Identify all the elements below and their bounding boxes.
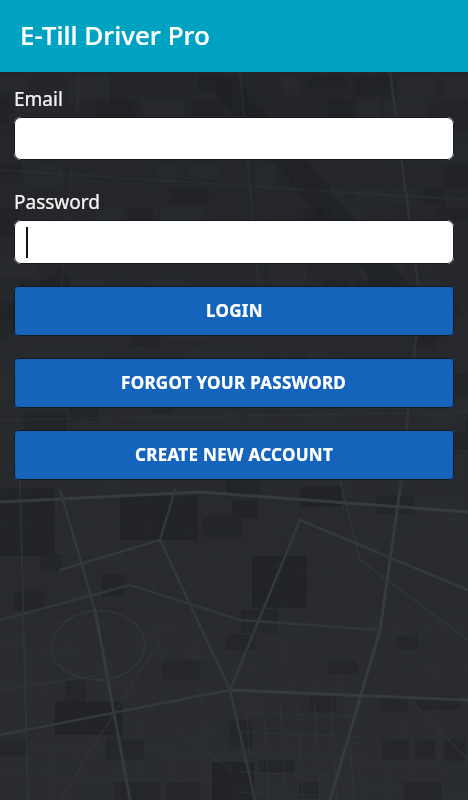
staticText: E-Till Driver Pro [20, 17, 210, 52]
button[interactable]: LOGIN [14, 286, 454, 336]
button[interactable] [14, 117, 454, 160]
staticText: LOGIN [206, 299, 263, 322]
staticText: Password [14, 189, 100, 215]
staticText: Email [14, 86, 63, 112]
button[interactable]: FORGOT YOUR PASSWORD [14, 358, 454, 408]
button[interactable]: CREATE NEW ACCOUNT [14, 430, 454, 480]
button[interactable] [14, 220, 454, 264]
staticText: FORGOT YOUR PASSWORD [121, 371, 347, 394]
staticText: CREATE NEW ACCOUNT [135, 443, 334, 466]
